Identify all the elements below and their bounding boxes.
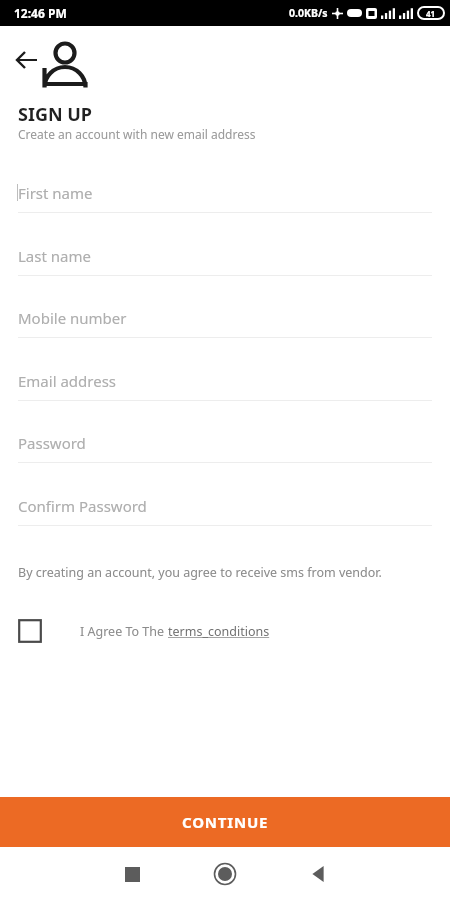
staticText: First name [18,183,93,203]
staticText: Mobile number [18,308,127,328]
button[interactable]: Home [203,852,247,896]
button[interactable]: Password [18,424,432,478]
button[interactable]: CONTINUE [0,797,450,847]
button[interactable]: Mobile number [18,299,432,353]
button[interactable]: Confirm Password [18,487,432,541]
button[interactable]: Email address [18,362,432,416]
staticText: Create an account with new email address [18,126,256,142]
staticText: SIGN UP [18,102,93,127]
button[interactable]: I Agree To The [18,612,298,650]
staticText: 41 [426,8,436,19]
button[interactable]: Recent apps [112,854,152,894]
staticText: Confirm Password [18,496,147,516]
staticText: Last name [18,246,91,266]
staticText: By creating an account, you agree to rec… [18,564,382,581]
staticText: I Agree To The [80,623,168,640]
button[interactable]: Back [298,854,338,894]
staticText: 12:46 PM [14,5,67,21]
staticText: CONTINUE [182,812,269,832]
button[interactable]: Last name [18,237,432,291]
button[interactable]: First name [18,174,432,228]
staticText: Email address [18,371,117,391]
staticText: 0.0KB/s [289,6,328,20]
button[interactable]: terms_conditions [168,623,270,640]
button[interactable]: Back [10,43,44,77]
staticText: Password [18,433,86,453]
